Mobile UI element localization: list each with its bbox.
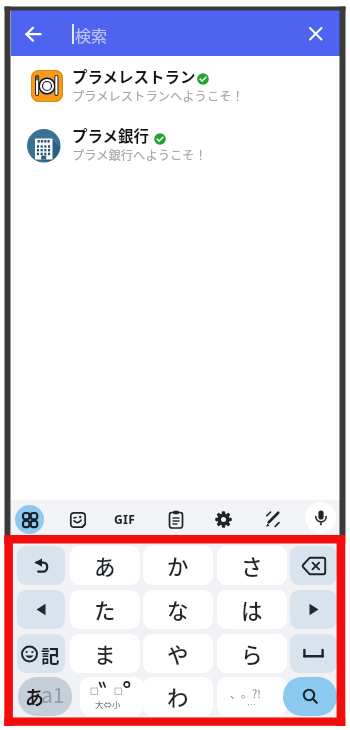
button[interactable] [15, 505, 44, 534]
staticText: 大⇔小 [95, 698, 121, 710]
staticText: さ [241, 550, 263, 581]
staticText: GIF [114, 511, 135, 527]
button[interactable]: た [70, 590, 140, 629]
staticText: な [167, 594, 189, 625]
button[interactable] [24, 25, 44, 43]
staticText: わ [167, 681, 189, 712]
button[interactable] [17, 546, 65, 585]
staticText: … [247, 698, 257, 711]
button[interactable]: あ [70, 546, 140, 585]
staticText: か [167, 550, 189, 581]
button[interactable]: 記 [17, 634, 65, 673]
button[interactable]: 、。?! [217, 677, 287, 716]
button[interactable]: か [143, 546, 213, 585]
staticText: ま [94, 638, 116, 669]
button[interactable]: わ [143, 677, 213, 716]
button[interactable] [290, 634, 337, 673]
button[interactable] [290, 590, 337, 629]
staticText: 検索 [75, 23, 108, 46]
button[interactable] [263, 510, 281, 528]
button[interactable] [283, 677, 337, 716]
button[interactable]: あ [18, 677, 72, 716]
button[interactable] [290, 546, 337, 585]
button[interactable] [69, 511, 87, 529]
staticText: あ [94, 550, 116, 581]
button[interactable]: 大⇔小 [80, 677, 144, 716]
button[interactable] [11, 116, 340, 171]
button[interactable]: な [143, 590, 213, 629]
button[interactable]: GIF [114, 511, 140, 527]
button[interactable] [11, 58, 340, 113]
button[interactable] [308, 26, 324, 42]
staticText: 記 [41, 642, 60, 666]
staticText: は [241, 594, 263, 625]
button[interactable]: ま [70, 634, 140, 673]
button[interactable]: ら [217, 634, 287, 673]
staticText: プラメ銀行 [72, 124, 150, 146]
staticText: ら [241, 638, 263, 669]
staticText: プラメ銀行へようこそ！ [72, 146, 207, 164]
button[interactable]: や [143, 634, 213, 673]
button[interactable] [168, 510, 184, 529]
staticText: a1 [41, 679, 65, 709]
button[interactable]: さ [217, 546, 287, 585]
staticText: た [94, 594, 116, 625]
button[interactable]: は [217, 590, 287, 629]
button[interactable] [305, 502, 336, 533]
staticText: プラメレストランへようこそ！ [72, 87, 244, 105]
staticText: プラメレストラン [72, 65, 196, 87]
staticText: あ [25, 683, 45, 711]
staticText: や [167, 638, 189, 669]
button[interactable] [17, 590, 65, 629]
button[interactable] [215, 511, 232, 528]
staticText: 、。?! [230, 685, 261, 701]
